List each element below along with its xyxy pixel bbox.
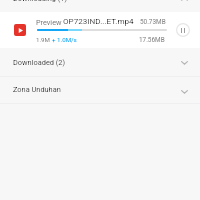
staticText: 50.73MB bbox=[140, 18, 166, 26]
button[interactable]: Zona Unduhan bbox=[0, 77, 200, 104]
staticText: Preview bbox=[36, 18, 62, 27]
staticText: Downloading (1) bbox=[13, 0, 68, 3]
button[interactable]: Downloading (1) bbox=[0, 0, 200, 12]
staticText: 17.56MB bbox=[139, 36, 165, 44]
staticText: Downloaded (2) bbox=[13, 58, 66, 67]
button[interactable] bbox=[0, 12, 200, 48]
staticText: 1.9M bbox=[36, 36, 52, 43]
staticText: Zona Unduhan bbox=[13, 85, 61, 94]
button[interactable]: Pause download bbox=[176, 23, 190, 37]
other: Collapse bbox=[181, 0, 188, 1]
staticText: + 1.0M/s bbox=[52, 36, 77, 43]
staticText: OP723IND...ET.mp4 bbox=[63, 16, 134, 25]
button[interactable]: Downloaded (2) bbox=[0, 48, 200, 77]
